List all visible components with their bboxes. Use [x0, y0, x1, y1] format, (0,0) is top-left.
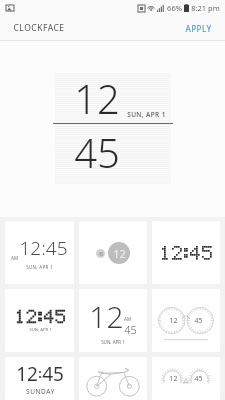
staticText: 12 [169, 374, 178, 384]
staticText: SUN, APR 1 [127, 110, 166, 119]
staticText: 12 [74, 71, 120, 125]
button[interactable]: Watch face option 2 [79, 221, 147, 284]
staticText: 45 [42, 361, 64, 387]
button[interactable]: Watch face option 1 [5, 221, 74, 284]
staticText: SUN, APR 1 [29, 327, 52, 333]
button[interactable]: Watch face option 1 [5, 289, 74, 352]
staticText: 45 [74, 125, 120, 179]
staticText: AM [124, 316, 131, 322]
staticText: SUN, APR 1 [101, 339, 125, 345]
button[interactable]: Watch face option 2 [79, 289, 147, 352]
staticText: APPLY [185, 23, 212, 34]
staticText: 12 [113, 246, 126, 261]
button[interactable]: Watch face option 3 [152, 289, 220, 352]
staticText: 45 [194, 316, 203, 326]
staticText: SUN, APR 1 [26, 264, 53, 270]
staticText: SUNDAY [26, 387, 55, 396]
button[interactable]: Watch face option 3 [152, 357, 220, 400]
button[interactable]: APPLY [182, 20, 215, 37]
button[interactable]: Watch face option 2 [79, 357, 147, 400]
staticText: 12 [169, 316, 178, 326]
button[interactable]: Watch face option 3 [152, 221, 220, 284]
staticText: 12 [89, 296, 124, 337]
staticText: 12 [16, 361, 38, 387]
button[interactable]: CLOCKFACE [13, 22, 65, 34]
staticText: CLOCKFACE [13, 22, 65, 34]
staticText: 45 [98, 251, 104, 257]
staticText: 45 [194, 374, 203, 384]
staticText: 12:45 [19, 235, 68, 261]
staticText: AM [11, 255, 18, 261]
staticText: 8:21 pm [191, 3, 220, 13]
staticText: 45 [124, 322, 137, 337]
button[interactable]: Watch face option 1 [5, 357, 74, 400]
staticText: 66% [167, 3, 182, 13]
